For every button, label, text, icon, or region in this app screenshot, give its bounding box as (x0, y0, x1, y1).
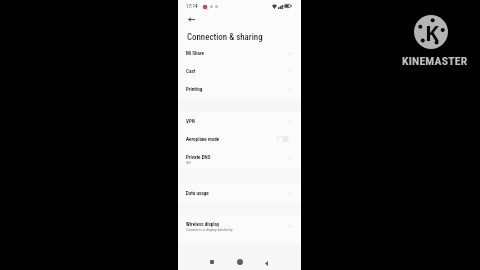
button[interactable]: Data usage (178, 184, 301, 202)
button[interactable]: Wireless display (178, 215, 301, 237)
button[interactable]: Private DNS (178, 149, 301, 169)
button[interactable]: Mi Share (178, 44, 301, 62)
staticText: K (425, 19, 439, 48)
staticText: Printing (186, 86, 203, 92)
staticText: Wireless display (186, 221, 220, 227)
button[interactable]: Back (259, 256, 273, 270)
staticText: VPN (186, 118, 195, 124)
staticText: Connect to a display wirelessly (186, 227, 233, 231)
button[interactable]: Home (233, 255, 247, 269)
staticText: Aeroplane mode (186, 136, 220, 142)
button[interactable]: VPN (178, 112, 301, 130)
staticText: Data usage (186, 190, 209, 196)
button[interactable]: Aeroplane mode (178, 130, 301, 148)
button[interactable]: Cast (178, 62, 301, 80)
button[interactable]: Back (184, 12, 198, 26)
staticText: Off (186, 160, 191, 164)
button[interactable]: Recent apps (205, 255, 219, 269)
staticText: Cast (186, 68, 196, 74)
staticText: Connection & sharing (187, 32, 263, 42)
staticText: Private DNS (186, 154, 211, 160)
staticText: Mi Share (186, 50, 205, 56)
staticText: 17:14 (186, 3, 198, 9)
button[interactable]: Printing (178, 80, 301, 98)
staticText: KINEMASTER (402, 54, 468, 68)
